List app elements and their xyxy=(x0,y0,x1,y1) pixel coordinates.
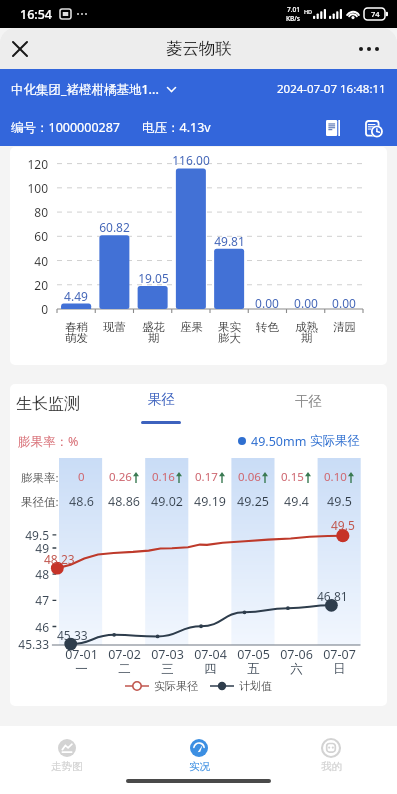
staticText: 49.25 xyxy=(237,493,269,510)
button[interactable]: 走势图 xyxy=(0,726,133,776)
staticText: 果径 xyxy=(148,391,175,408)
staticText: 现蕾 xyxy=(103,320,126,334)
staticText: 五 xyxy=(247,661,260,677)
staticText: 0.17 xyxy=(195,469,218,485)
staticText: HD xyxy=(304,8,313,15)
staticText: 07-04 xyxy=(194,646,227,663)
button[interactable]: History xyxy=(360,115,386,141)
staticText: 0.26 xyxy=(109,469,132,485)
staticText: 100 xyxy=(27,180,48,196)
staticText: 干径 xyxy=(295,393,322,410)
staticText: 转色 xyxy=(256,320,279,334)
staticText: 07-07 xyxy=(323,646,356,663)
staticText: 0.06 xyxy=(238,469,261,485)
staticText: 菱云物联 xyxy=(166,38,232,59)
staticText: 0.00 xyxy=(255,295,279,311)
staticText: 一 xyxy=(75,661,88,677)
staticText: 49.19 xyxy=(194,493,226,510)
staticText: 我的 xyxy=(321,760,342,773)
staticText: 果径值: xyxy=(21,494,59,510)
staticText: 60.82 xyxy=(99,219,130,235)
staticText: 三 xyxy=(161,661,174,677)
staticText: 07-03 xyxy=(151,646,184,663)
staticText: 46 xyxy=(35,619,49,635)
button[interactable]: 果径 xyxy=(132,391,190,424)
staticText: KB/s xyxy=(286,14,301,23)
staticText: 49.5 xyxy=(25,527,49,543)
staticText: 40 xyxy=(34,253,48,269)
staticText: 47 xyxy=(35,592,49,608)
staticText: 48.86 xyxy=(108,493,140,510)
staticText: 二 xyxy=(118,661,131,677)
staticText: 计划值 xyxy=(239,679,272,693)
staticText: 0 xyxy=(78,469,85,485)
button[interactable]: 实况 xyxy=(133,726,265,776)
staticText: 膨果率: xyxy=(21,470,59,486)
button[interactable]: Report xyxy=(320,115,346,141)
staticText: 48 xyxy=(35,566,49,582)
staticText: 45.33 xyxy=(18,636,49,652)
staticText: 120 xyxy=(27,156,48,172)
staticText: 7.01 xyxy=(287,5,300,14)
staticText: 46.81 xyxy=(317,588,348,604)
staticText: 74 xyxy=(371,9,380,19)
staticText: 80 xyxy=(34,204,48,220)
staticText: 编号：1000000287 xyxy=(11,119,121,136)
staticText: 春稍 萌发 xyxy=(65,320,88,345)
staticText: 清园 xyxy=(333,320,356,334)
staticText: 中化集团_褚橙柑橘基地1... xyxy=(11,81,159,98)
staticText: 0.00 xyxy=(294,295,318,311)
staticText: 日 xyxy=(333,661,346,677)
staticText: 0.00 xyxy=(332,295,356,311)
button[interactable]: More options xyxy=(351,31,387,67)
staticText: 盛花 期 xyxy=(142,320,165,345)
staticText: 四 xyxy=(204,661,217,677)
staticText: 0.10 xyxy=(324,469,347,485)
staticText: 实际果径 xyxy=(310,433,360,449)
staticText: 走势图 xyxy=(51,760,83,773)
staticText: 49 xyxy=(35,540,49,556)
staticText: 45.33 xyxy=(57,627,88,643)
staticText: 49.50mm xyxy=(251,433,307,449)
staticText: 49.5 xyxy=(331,517,355,533)
staticText: 49.5 xyxy=(327,493,352,510)
staticText: 实况 xyxy=(189,760,210,773)
button[interactable]: 我的 xyxy=(265,726,397,776)
button[interactable]: Close xyxy=(2,31,38,67)
staticText: 2024-07-07 16:48:11 xyxy=(277,81,386,97)
staticText: 电压：4.13v xyxy=(142,119,211,136)
staticText: 49.02 xyxy=(151,493,183,510)
button[interactable]: 干径 xyxy=(279,391,337,411)
staticText: 07-06 xyxy=(280,646,313,663)
staticText: 实际果径 xyxy=(154,679,198,693)
staticText: 4.49 xyxy=(64,288,88,304)
staticText: 48.23 xyxy=(44,551,75,567)
staticText: 0 xyxy=(41,301,48,317)
staticText: 0.15 xyxy=(281,469,304,485)
staticText: 49.81 xyxy=(214,233,245,249)
staticText: 20 xyxy=(34,277,48,293)
staticText: 07-05 xyxy=(237,646,270,663)
staticText: 07-02 xyxy=(108,646,141,663)
staticText: 座果 xyxy=(180,320,203,334)
staticText: 0.16 xyxy=(152,469,175,485)
staticText: 生长监测 xyxy=(16,394,80,414)
staticText: 六 xyxy=(290,661,303,677)
staticText: 果实 膨大 xyxy=(218,320,241,345)
staticText: 49.4 xyxy=(284,493,309,510)
staticText: 19.05 xyxy=(138,270,169,286)
staticText: 07-01 xyxy=(65,646,98,663)
staticText: 膨果率：% xyxy=(18,433,79,449)
staticText: 16:54 xyxy=(20,6,53,23)
staticText: 60 xyxy=(34,228,48,244)
button[interactable]: 中化集团_褚橙柑橘基地1... xyxy=(11,81,176,98)
staticText: 成熟 期 xyxy=(295,320,318,345)
staticText: 116.00 xyxy=(172,152,210,168)
staticText: 48.6 xyxy=(69,493,94,510)
button[interactable]: 生长监测 xyxy=(16,392,80,415)
